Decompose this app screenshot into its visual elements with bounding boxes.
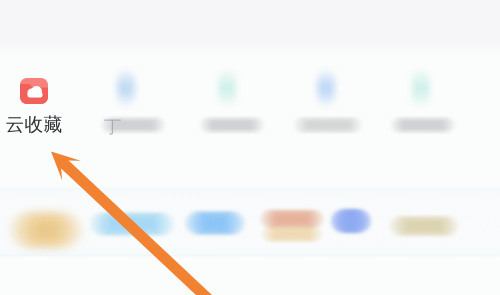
staticText: 云收藏	[5, 113, 62, 136]
staticText: 丁	[104, 116, 121, 137]
button[interactable]: 云收藏	[0, 72, 68, 136]
